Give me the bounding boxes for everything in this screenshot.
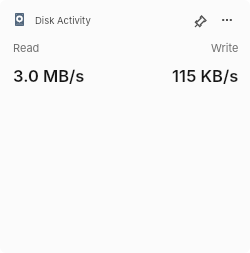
staticText: Disk Activity xyxy=(35,15,91,26)
button[interactable]: Pin widget xyxy=(190,12,210,32)
staticText: Write xyxy=(211,41,239,54)
staticText: 3.0 MB/s xyxy=(13,66,85,86)
button[interactable]: More options xyxy=(217,10,237,30)
staticText: 115 KB/s xyxy=(172,66,239,86)
staticText: Read xyxy=(13,41,40,54)
